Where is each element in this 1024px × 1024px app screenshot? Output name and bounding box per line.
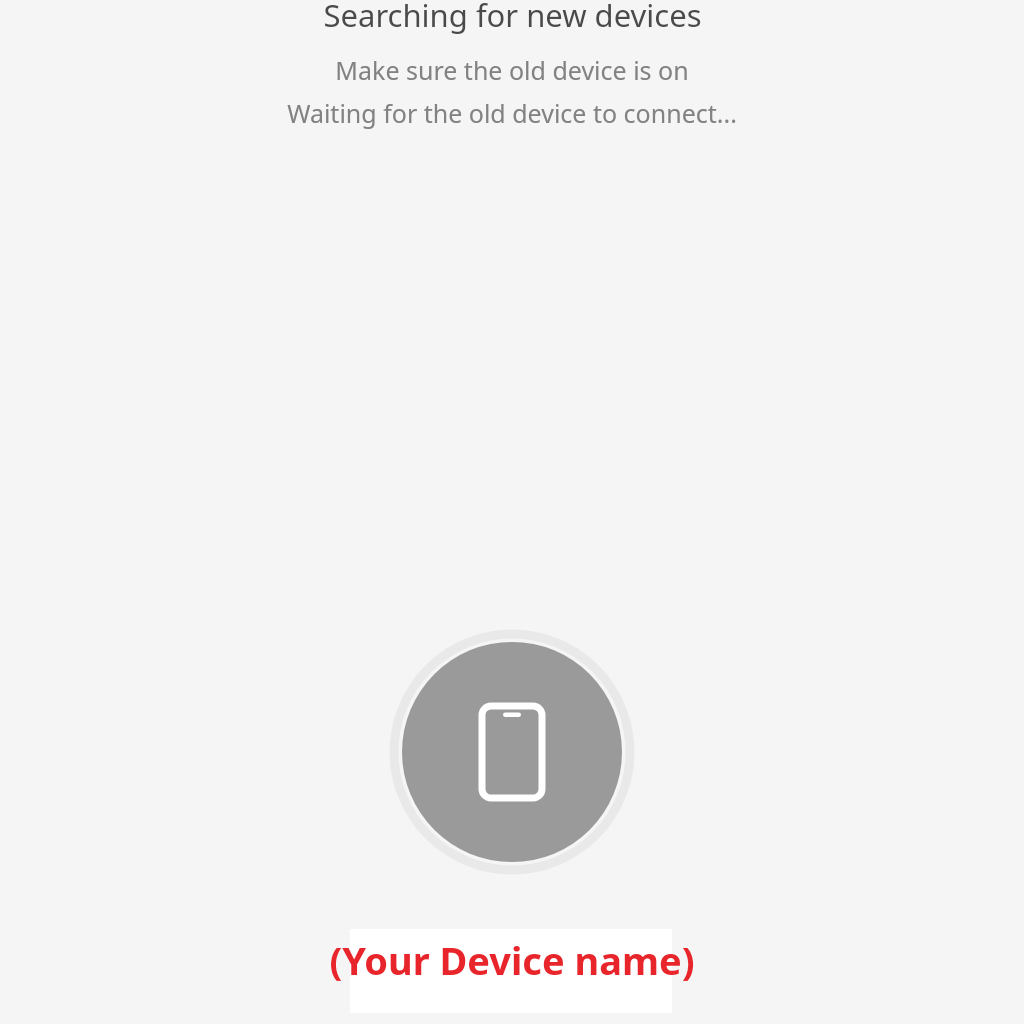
button[interactable]: Your device	[388, 628, 636, 876]
staticText: (Your Device name)	[329, 934, 695, 986]
staticText: Waiting for the old device to connect...	[287, 96, 737, 130]
staticText: Searching for new devices	[323, 0, 702, 36]
staticText: Make sure the old device is on	[335, 53, 689, 87]
